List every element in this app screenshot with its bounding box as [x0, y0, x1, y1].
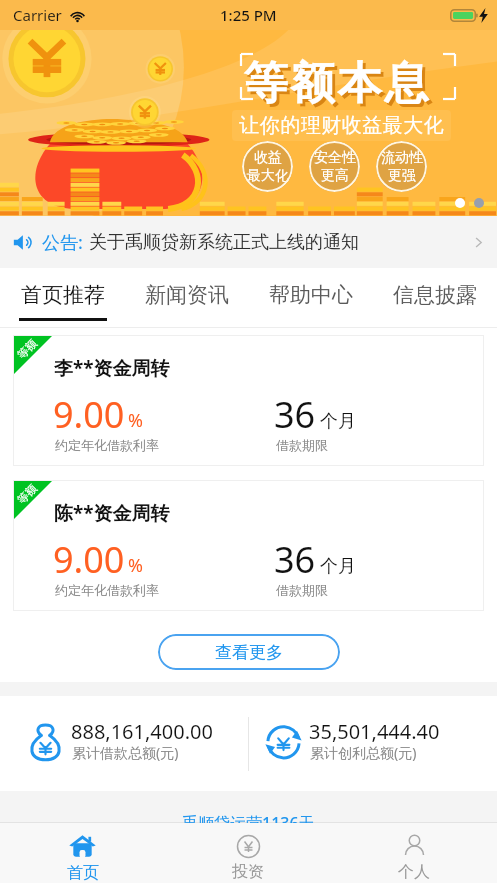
staticText: 等额 [14, 336, 40, 362]
staticText: 首页 [67, 863, 99, 883]
staticText: 收益 [254, 149, 282, 167]
staticText: 投资 [232, 862, 264, 882]
staticText: 借款期限 [276, 437, 328, 453]
button[interactable]: 35,501,444.40 [249, 696, 497, 791]
button[interactable]: 等额 [13, 480, 484, 611]
staticText: % [128, 408, 143, 433]
staticText: 查看更多 [215, 642, 283, 663]
staticText: 安全性 [314, 149, 356, 167]
staticText: 帮助中心 [269, 282, 353, 308]
button[interactable]: 新闻资讯 [125, 268, 249, 327]
button[interactable]: 投资 [165, 823, 331, 883]
staticText: 累计借款总额(元) [72, 743, 179, 762]
button[interactable]: 查看更多 [158, 634, 340, 670]
staticText: 流动性 [381, 149, 423, 167]
staticText: 首页推荐 [21, 282, 105, 308]
staticText: 最大化 [247, 167, 289, 185]
staticText: 等额本息 [245, 59, 433, 114]
staticText: Carrier [13, 5, 62, 25]
staticText: 9.00 [53, 535, 125, 584]
staticText: 公告: [42, 230, 83, 255]
staticText: 让你的理财收益最大化 [239, 113, 444, 138]
staticText: 等额 [14, 481, 40, 507]
staticText: 个月 [320, 555, 356, 578]
button[interactable]: 首页 [0, 823, 165, 883]
button[interactable]: 公告 [0, 216, 497, 268]
staticText: 36 [274, 390, 316, 439]
staticText: 李**资金周转 [54, 355, 170, 381]
staticText: 更高 [321, 167, 349, 185]
staticText: 9.00 [53, 390, 125, 439]
staticText: 36 [274, 535, 316, 584]
staticText: 禹顺贷运营1136天 [182, 812, 315, 834]
staticText: 陈**资金周转 [54, 500, 170, 526]
staticText: 888,161,400.00 [71, 718, 213, 745]
button[interactable]: 888,161,400.00 [0, 696, 248, 791]
staticText: 约定年化借款利率 [55, 437, 159, 453]
other: 公告 [13, 232, 34, 253]
staticText: % [128, 553, 143, 578]
staticText: 个月 [320, 410, 356, 433]
staticText: 新闻资讯 [145, 282, 229, 308]
staticText: 累计创利总额(元) [310, 743, 417, 762]
button[interactable]: 首页推荐 [0, 268, 125, 327]
staticText: 信息披露 [393, 282, 477, 308]
button[interactable]: 等额 [13, 335, 484, 466]
staticText: 1:25 PM [220, 5, 277, 25]
staticText: 等额本息 [242, 56, 430, 111]
button[interactable]: 信息披露 [373, 268, 497, 327]
staticText: 关于禹顺贷新系统正式上线的通知 [89, 231, 359, 254]
staticText: 更强 [388, 167, 416, 185]
staticText: 约定年化借款利率 [55, 582, 159, 598]
staticText: 个人 [398, 862, 430, 882]
button[interactable]: 帮助中心 [249, 268, 373, 327]
staticText: 35,501,444.40 [309, 718, 440, 745]
staticText: 借款期限 [276, 582, 328, 598]
button[interactable]: 个人 [331, 823, 497, 883]
